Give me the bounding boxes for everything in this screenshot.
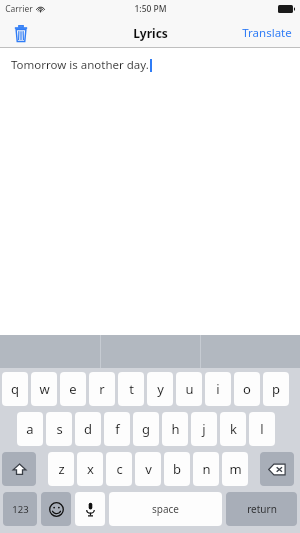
staticText: w bbox=[39, 380, 50, 398]
staticText: y bbox=[157, 380, 164, 398]
staticText: v bbox=[145, 460, 152, 478]
staticText: b bbox=[173, 460, 181, 478]
button[interactable]: Delete bbox=[8, 20, 34, 46]
button[interactable]: r bbox=[89, 372, 115, 406]
button[interactable]: h bbox=[162, 412, 188, 446]
staticText: c bbox=[116, 460, 123, 478]
button[interactable]: d bbox=[75, 412, 101, 446]
button[interactable]: t bbox=[118, 372, 144, 406]
staticText: 123 bbox=[12, 503, 29, 516]
button[interactable]: p bbox=[263, 372, 289, 406]
button[interactable]: space bbox=[109, 492, 222, 526]
staticText: g bbox=[142, 420, 150, 438]
staticText: k bbox=[230, 420, 237, 438]
staticText: l bbox=[260, 420, 264, 438]
button[interactable]: c bbox=[106, 452, 132, 486]
button[interactable]: 123 bbox=[3, 492, 37, 526]
button[interactable]: m bbox=[222, 452, 248, 486]
staticText: space bbox=[152, 502, 179, 516]
button[interactable]: f bbox=[104, 412, 130, 446]
staticText: a bbox=[26, 420, 34, 438]
button[interactable]: z bbox=[48, 452, 74, 486]
staticText: z bbox=[58, 460, 65, 478]
staticText: t bbox=[129, 380, 134, 398]
button[interactable]: Emoji bbox=[41, 492, 71, 526]
button[interactable]: Delete bbox=[260, 452, 294, 486]
staticText: p bbox=[272, 380, 280, 398]
staticText: f bbox=[115, 420, 120, 438]
button[interactable]: e bbox=[60, 372, 86, 406]
staticText: i bbox=[216, 380, 220, 398]
button[interactable]: u bbox=[176, 372, 202, 406]
button[interactable]: y bbox=[147, 372, 173, 406]
staticText: h bbox=[171, 420, 180, 438]
button[interactable]: Dictate bbox=[75, 492, 105, 526]
button[interactable]: s bbox=[46, 412, 72, 446]
button[interactable]: Translate bbox=[242, 25, 292, 41]
staticText: r bbox=[99, 380, 105, 398]
button[interactable]: return bbox=[226, 492, 297, 526]
staticText: Tomorrow is another day. bbox=[11, 57, 149, 73]
button[interactable]: g bbox=[133, 412, 159, 446]
button[interactable]: j bbox=[191, 412, 217, 446]
staticText: u bbox=[185, 380, 194, 398]
button[interactable]: b bbox=[164, 452, 190, 486]
staticText: m bbox=[229, 460, 242, 478]
button[interactable]: o bbox=[234, 372, 260, 406]
staticText: s bbox=[56, 420, 63, 438]
staticText: Lyrics bbox=[133, 25, 168, 41]
staticText: n bbox=[202, 460, 211, 478]
staticText: o bbox=[243, 380, 251, 398]
button[interactable]: w bbox=[31, 372, 57, 406]
button[interactable]: n bbox=[193, 452, 219, 486]
staticText: e bbox=[69, 380, 77, 398]
staticText: q bbox=[11, 380, 19, 398]
button[interactable]: l bbox=[249, 412, 275, 446]
staticText: d bbox=[84, 420, 92, 438]
button[interactable]: q bbox=[2, 372, 28, 406]
button[interactable]: Shift bbox=[2, 452, 36, 486]
button[interactable]: x bbox=[77, 452, 103, 486]
staticText: Translate bbox=[242, 25, 292, 41]
staticText: j bbox=[202, 420, 206, 438]
staticText: return bbox=[247, 502, 277, 516]
button[interactable]: a bbox=[17, 412, 43, 446]
button[interactable]: k bbox=[220, 412, 246, 446]
button[interactable]: v bbox=[135, 452, 161, 486]
staticText: x bbox=[87, 460, 94, 478]
staticText: 1:50 PM bbox=[134, 3, 167, 15]
button[interactable]: i bbox=[205, 372, 231, 406]
staticText: Carrier bbox=[5, 3, 33, 15]
